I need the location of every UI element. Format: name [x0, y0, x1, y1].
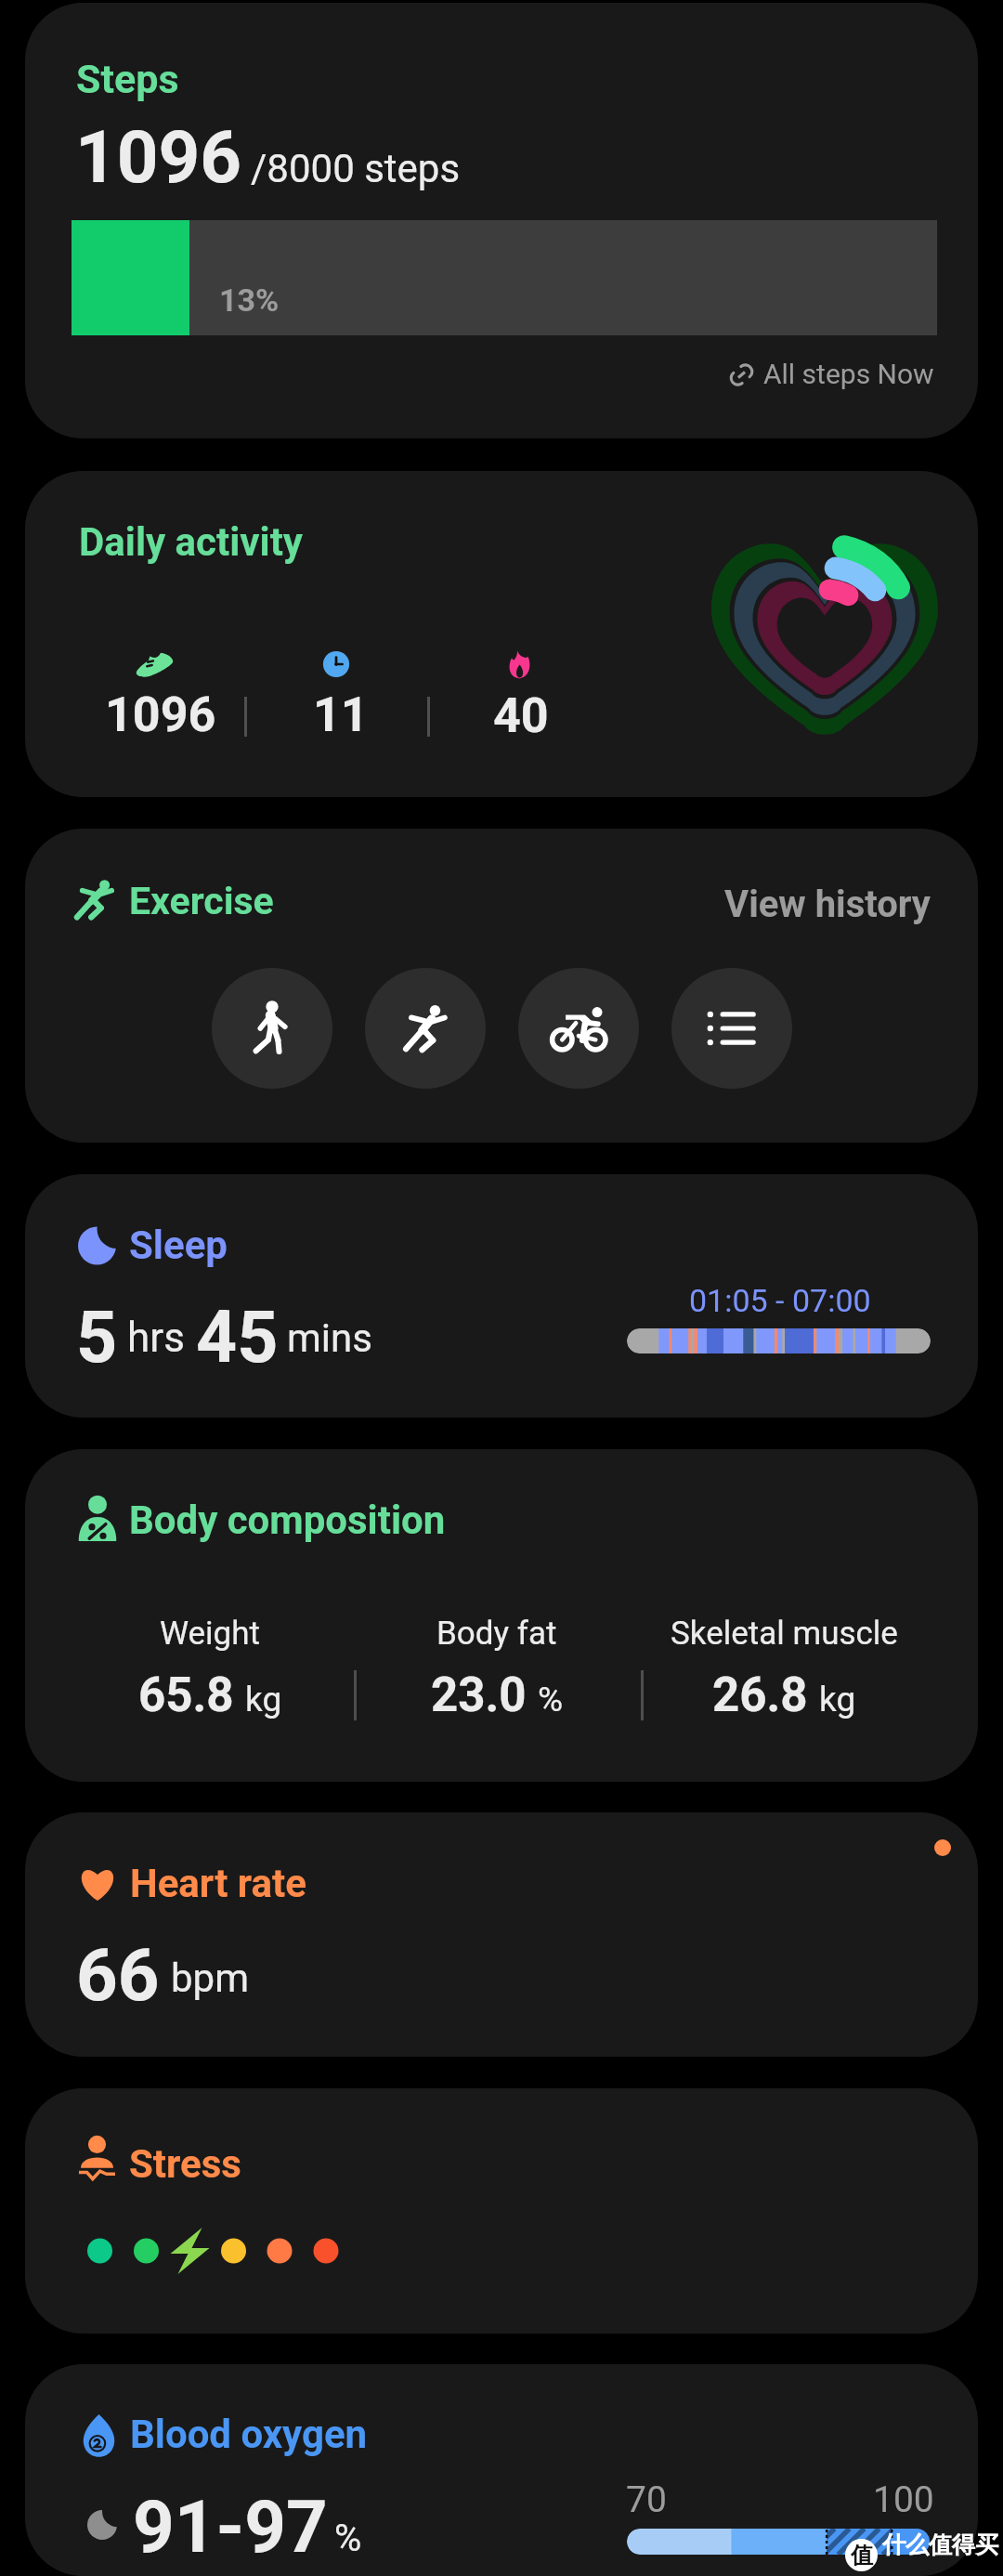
staticText: kg: [245, 1680, 282, 1720]
staticText: 91-97: [133, 2485, 328, 2569]
button[interactable]: Running: [365, 968, 486, 1089]
button[interactable]: Walking: [212, 968, 332, 1089]
button[interactable]: Steps: [25, 3, 978, 438]
staticText: 01:05 - 07:00: [689, 1282, 871, 1319]
staticText: Body fat: [436, 1615, 557, 1653]
button[interactable]: More exercises: [671, 968, 792, 1089]
staticText: 13%: [219, 281, 280, 319]
staticText: bpm: [171, 1955, 249, 2001]
staticText: Blood oxygen: [130, 2412, 368, 2457]
staticText: Weight: [160, 1615, 260, 1653]
staticText: %: [334, 2517, 362, 2560]
staticText: 40: [493, 687, 549, 744]
staticText: View history: [724, 883, 931, 926]
staticText: kg: [819, 1680, 856, 1720]
button[interactable]: View history: [702, 873, 953, 931]
button[interactable]: Exercise: [25, 829, 978, 1143]
staticText: 100: [873, 2478, 934, 2521]
staticText: Skeletal muscle: [671, 1615, 898, 1653]
staticText: Heart rate: [130, 1861, 306, 1906]
staticText: 值: [851, 2542, 873, 2569]
staticText: 1096: [105, 686, 216, 743]
staticText: All steps Now: [763, 358, 934, 390]
staticText: %: [538, 1680, 564, 1720]
staticText: 66: [76, 1933, 160, 2018]
button[interactable]: All steps Now: [715, 351, 944, 398]
staticText: 11: [313, 686, 369, 743]
staticText: 45: [196, 1296, 279, 1380]
staticText: Stress: [129, 2141, 241, 2187]
staticText: 23.0: [431, 1667, 527, 1723]
staticText: hrs: [127, 1314, 185, 1362]
staticText: Sleep: [129, 1223, 228, 1268]
button[interactable]: Heart rate: [25, 1812, 978, 2057]
button[interactable]: Body composition: [25, 1449, 978, 1782]
button[interactable]: Stress: [25, 2088, 978, 2334]
staticText: 70: [626, 2478, 667, 2521]
button[interactable]: Sleep: [25, 1174, 978, 1418]
staticText: 1096: [75, 115, 242, 200]
staticText: Body composition: [129, 1497, 446, 1543]
staticText: 5: [76, 1296, 118, 1380]
staticText: Steps: [76, 56, 179, 102]
button[interactable]: Daily activity: [25, 471, 978, 797]
staticText: 什么值得买: [882, 2530, 998, 2559]
staticText: Exercise: [129, 879, 274, 923]
staticText: Daily activity: [79, 519, 304, 565]
staticText: /8000 steps: [251, 146, 461, 191]
staticText: mins: [287, 1315, 372, 1361]
button[interactable]: Blood oxygen: [25, 2364, 978, 2576]
staticText: 26.8: [712, 1667, 808, 1723]
button[interactable]: Cycling: [518, 968, 639, 1089]
staticText: 65.8: [138, 1667, 234, 1723]
